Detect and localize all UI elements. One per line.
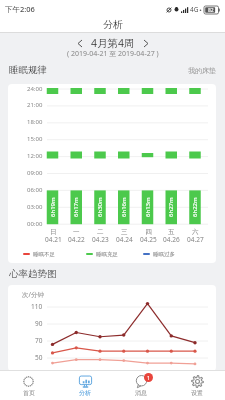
- staticText: 04.23: [92, 235, 109, 243]
- staticText: 分析: [79, 389, 91, 397]
- staticText: 消息: [135, 389, 147, 397]
- staticText: 我的床垫: [188, 66, 216, 75]
- staticText: 次/分钟: [22, 290, 44, 299]
- staticText: 6h13m: [144, 197, 152, 217]
- staticText: 110: [31, 302, 43, 311]
- staticText: 五: [168, 228, 175, 236]
- staticText: 6h16m: [120, 197, 128, 217]
- staticText: 15:00: [27, 135, 43, 143]
- staticText: 分析: [103, 18, 123, 31]
- staticText: 睡眠过多: [153, 251, 175, 258]
- staticText: 4月第4周: [91, 36, 135, 50]
- staticText: 睡眠规律: [9, 64, 47, 76]
- staticText: 09:00: [27, 169, 43, 177]
- staticText: 6h22m: [191, 197, 199, 217]
- button[interactable]: 分析: [57, 371, 113, 400]
- staticText: 03:00: [27, 203, 43, 211]
- button[interactable]: Next week: [135, 37, 157, 49]
- staticText: 4G: [190, 5, 199, 14]
- staticText: 日: [50, 228, 57, 236]
- button[interactable]: 1: [113, 371, 169, 400]
- staticText: 04.25: [140, 235, 157, 243]
- staticText: 21:00: [27, 101, 43, 109]
- staticText: 24:00: [27, 85, 43, 93]
- staticText: 四: [145, 228, 152, 236]
- staticText: 二: [97, 228, 104, 236]
- button[interactable]: 设置: [169, 371, 225, 400]
- staticText: 18:00: [27, 118, 43, 126]
- staticText: 90: [35, 319, 43, 328]
- staticText: 04.27: [187, 235, 204, 243]
- staticText: 一: [73, 228, 80, 236]
- staticText: 1: [147, 374, 151, 381]
- staticText: 三: [121, 228, 128, 236]
- staticText: 12:00: [27, 152, 43, 160]
- staticText: 首页: [23, 389, 35, 397]
- staticText: 04.21: [45, 235, 62, 243]
- staticText: 心率趋势图: [9, 268, 57, 280]
- staticText: 睡眠充足: [96, 251, 118, 258]
- staticText: 6h17m: [72, 197, 80, 217]
- staticText: 设置: [191, 389, 203, 397]
- staticText: 04.26: [163, 235, 180, 243]
- staticText: 六: [192, 228, 199, 236]
- staticText: 下午2:06: [5, 4, 35, 14]
- staticText: 睡眠不足: [33, 251, 55, 258]
- button[interactable]: 我的床垫: [188, 66, 216, 75]
- button[interactable]: 首页: [0, 371, 57, 400]
- staticText: 04.24: [116, 235, 133, 243]
- staticText: 50: [35, 353, 43, 362]
- button[interactable]: Previous week: [69, 37, 91, 49]
- staticText: 6h27m: [167, 197, 175, 217]
- staticText: 82: [208, 7, 214, 14]
- staticText: 04.22: [68, 235, 85, 243]
- staticText: 6h30m: [96, 197, 104, 217]
- staticText: 00:00: [27, 220, 43, 228]
- staticText: 6h19m: [49, 197, 57, 217]
- staticText: 06:00: [27, 186, 43, 194]
- staticText: 70: [35, 336, 43, 345]
- staticText: ( 2019-04-21 至 2019-04-27 ): [67, 49, 159, 59]
